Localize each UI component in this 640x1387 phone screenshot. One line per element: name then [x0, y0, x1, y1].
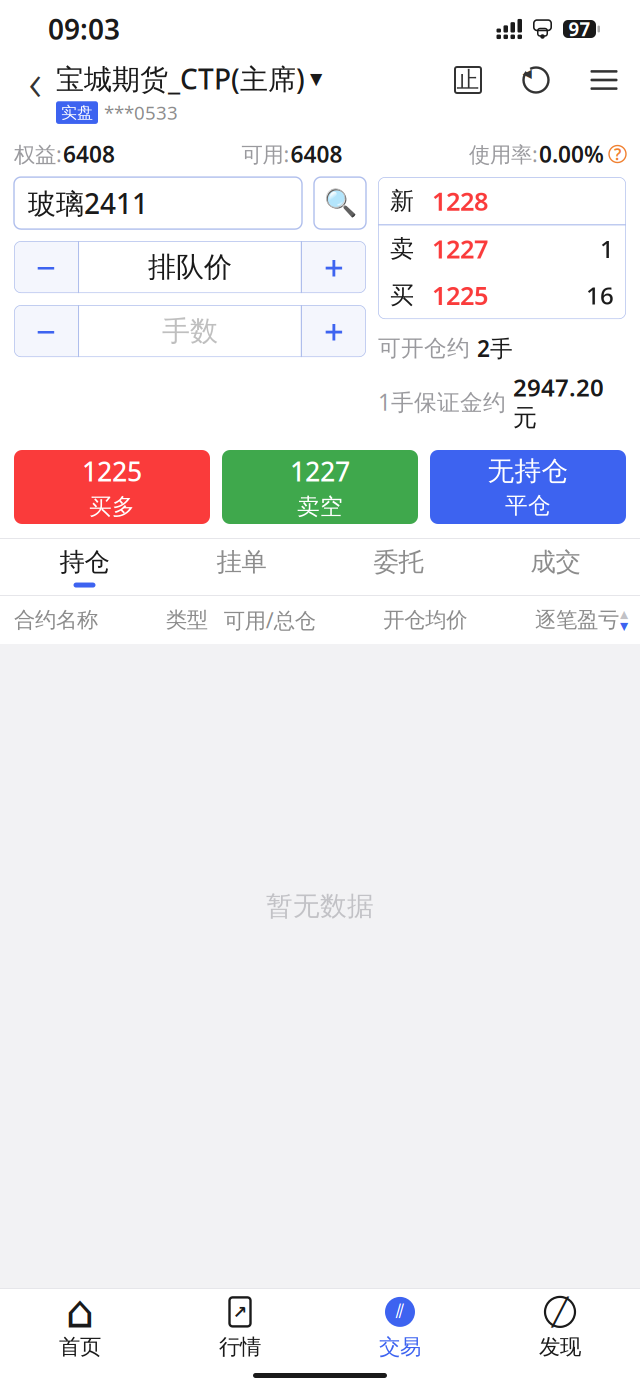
staticText: ▼	[620, 620, 628, 632]
staticText: 使用率:	[469, 140, 538, 168]
button[interactable]: 减少	[14, 305, 78, 357]
staticText: ?	[614, 143, 621, 165]
staticText: 暂无数据	[266, 890, 374, 922]
button[interactable]: 买	[378, 272, 626, 318]
staticText: ⌂	[65, 1286, 94, 1338]
staticText: 类型	[166, 607, 208, 633]
staticText: +	[324, 244, 344, 290]
button[interactable]: ⫽	[320, 1297, 480, 1359]
staticText: 玻璃2411	[28, 184, 148, 222]
staticText: 持仓	[59, 546, 109, 577]
staticText: 委托	[373, 546, 423, 577]
button[interactable]: 1225	[14, 450, 210, 524]
staticText: 逐笔盈亏	[535, 607, 619, 633]
staticText: 16	[586, 279, 614, 311]
staticText: 1手保证金约	[378, 387, 506, 417]
staticText: 止	[456, 66, 479, 94]
button[interactable]: 卖	[378, 225, 626, 272]
staticText: 平仓	[505, 491, 551, 519]
staticText: 新	[390, 186, 414, 216]
button[interactable]: 手数	[79, 305, 301, 357]
staticText: 可用/总仓	[224, 606, 316, 634]
staticText: 开仓均价	[383, 607, 467, 633]
staticText: 97	[568, 17, 590, 41]
staticText: 行情	[219, 1334, 261, 1360]
button[interactable]: 1227	[222, 450, 418, 524]
staticText: 卖	[390, 234, 414, 263]
staticText: 挂单	[216, 546, 266, 577]
staticText: 1227	[432, 232, 488, 265]
staticText: 🔍	[323, 188, 356, 218]
staticText: 首页	[59, 1334, 101, 1360]
staticText: 发现	[539, 1334, 581, 1360]
staticText: 1227	[290, 453, 350, 489]
staticText: 2手	[477, 333, 513, 363]
staticText: 排队价	[148, 250, 232, 284]
button[interactable]: 新	[378, 178, 626, 224]
staticText: ↗	[232, 1302, 247, 1322]
button[interactable]: 菜单	[584, 58, 624, 102]
button[interactable]: 增加	[302, 305, 366, 357]
button[interactable]: 刷新	[516, 58, 556, 102]
button[interactable]: ╱	[480, 1297, 640, 1359]
button[interactable]: ⌂	[0, 1297, 160, 1359]
staticText: 1228	[432, 184, 488, 218]
staticText: −	[36, 244, 56, 290]
staticText: ◀	[522, 66, 531, 80]
button[interactable]: 减少	[14, 241, 78, 293]
button[interactable]: 排队价	[79, 241, 301, 293]
button[interactable]: ↗	[160, 1297, 320, 1359]
button[interactable]: 委托	[320, 539, 477, 595]
button[interactable]: 玻璃2411	[14, 177, 302, 229]
staticText: ▲	[620, 608, 628, 620]
button[interactable]: 逐笔盈亏	[535, 607, 628, 633]
staticText: ⫽	[395, 1302, 404, 1322]
button[interactable]: 成交	[477, 539, 634, 595]
staticText: 买	[390, 280, 414, 310]
button[interactable]: 增加	[302, 241, 366, 293]
staticText: 成交	[530, 546, 580, 577]
staticText: 交易	[379, 1334, 421, 1360]
staticText: ‹	[28, 47, 41, 115]
staticText: 无持仓	[487, 455, 568, 487]
staticText: 6408	[63, 139, 115, 169]
staticText: 实盘	[61, 103, 93, 122]
staticText: 1225	[432, 278, 488, 312]
button[interactable]: 持仓	[6, 539, 163, 595]
button[interactable]: 止损设置	[448, 58, 488, 102]
staticText: 6408	[290, 139, 342, 169]
staticText: 手数	[162, 314, 218, 348]
staticText: 0.00%	[539, 139, 604, 169]
staticText: +	[324, 308, 344, 354]
button[interactable]: 宝城期货_CTP(主席)	[56, 60, 322, 97]
staticText: 合约名称	[14, 607, 98, 633]
staticText: 权益:	[14, 140, 62, 168]
staticText: 2947.20元	[513, 371, 604, 433]
staticText: 1225	[82, 453, 142, 489]
staticText: 买多	[89, 493, 135, 521]
staticText: 1	[600, 233, 614, 265]
staticText: ╱	[552, 1297, 568, 1327]
staticText: ***0533	[104, 100, 178, 125]
staticText: −	[36, 308, 56, 354]
button[interactable]: 无持仓	[430, 450, 626, 524]
button[interactable]: Back	[14, 56, 56, 106]
staticText: 可开仓约	[378, 334, 470, 362]
staticText: ▼	[310, 69, 322, 88]
staticText: 09:03	[48, 10, 120, 48]
staticText: 卖空	[297, 493, 343, 521]
button[interactable]: 搜索合约	[314, 177, 366, 229]
staticText: 宝城期货_CTP(主席)	[56, 60, 305, 97]
button[interactable]: 挂单	[163, 539, 320, 595]
staticText: 可用:	[241, 140, 289, 168]
